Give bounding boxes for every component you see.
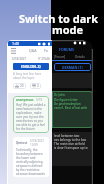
button[interactable]: Dr. John <box>52 91 93 128</box>
staticText: mode <box>52 22 84 37</box>
button[interactable]: GERMAN (1) <box>54 63 91 71</box>
staticText: 9' 21546 <box>38 57 50 61</box>
button[interactable]: anonymous <box>13 96 49 133</box>
button[interactable] <box>52 73 93 88</box>
staticText: Fo <box>44 48 48 53</box>
staticText: Details <box>75 55 85 59</box>
button[interactable]: Upvote <box>15 84 24 88</box>
staticText: 5/18 <box>36 98 43 102</box>
staticText: level between two nes belongs to the box… <box>54 134 88 150</box>
staticText: FORUMS <box>59 47 74 52</box>
button[interactable]: FORUMS <box>52 40 93 184</box>
staticText: 2 <box>37 84 39 88</box>
button[interactable]: 1:40 <box>8 41 54 184</box>
staticText: anonymous <box>16 98 34 102</box>
staticText: 20 <box>20 84 24 88</box>
staticText: A long text line here about the topic <box>13 72 49 80</box>
staticText: Switch to dark <box>19 11 99 26</box>
staticText: 5/18/2021 <box>12 57 27 61</box>
staticText: GERMAN (1) <box>62 65 83 70</box>
staticText: Qmtest <box>16 141 28 145</box>
staticText: ENGLISH-3) <box>21 64 41 69</box>
button[interactable]: Downvote <box>32 84 39 88</box>
button[interactable]: level between two nes belongs to the box… <box>52 132 93 166</box>
staticText: Die figuren leiter De janchmalmplan esen… <box>54 98 88 110</box>
staticText: Technically, the boundary between the lo… <box>16 148 46 175</box>
staticText: 5/18/2021 13:09 <box>30 139 46 147</box>
staticText: [Forum] <box>54 55 66 59</box>
staticText: 1:40 <box>12 41 19 46</box>
button[interactable]: Qmtest <box>13 137 49 177</box>
staticText: Q&A <box>29 48 37 53</box>
button[interactable]: ENGLISH-3) <box>13 63 49 70</box>
staticText: Dr. John <box>54 93 65 97</box>
staticText: Hey! We just added a new feature to the … <box>16 103 46 131</box>
